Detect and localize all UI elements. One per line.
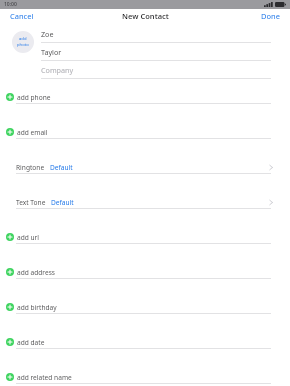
staticText: New Contact	[122, 11, 169, 21]
staticText: Zoe	[41, 29, 54, 39]
button[interactable]: add address	[0, 266, 290, 279]
staticText: Taylor	[41, 47, 62, 57]
staticText: add related name	[17, 373, 72, 382]
staticText: add phone	[17, 93, 51, 102]
staticText: add url	[17, 233, 40, 242]
button[interactable]: add date	[0, 336, 290, 349]
staticText: add birthday	[17, 303, 57, 312]
staticText: add address	[17, 268, 55, 277]
button[interactable]: add birthday	[0, 301, 290, 314]
staticText: Default	[50, 163, 73, 172]
button[interactable]: Done	[251, 9, 290, 23]
staticText: photo	[17, 42, 29, 48]
staticText: Company	[41, 65, 74, 75]
staticText: add	[19, 36, 27, 42]
staticText: 10:00	[4, 1, 17, 8]
staticText: Cancel	[10, 11, 34, 21]
button[interactable]: add email	[0, 126, 290, 139]
staticText: Default	[51, 198, 74, 207]
button[interactable]: Taylor	[41, 43, 271, 61]
button[interactable]: Company	[41, 61, 271, 79]
button[interactable]: Text Tone	[0, 196, 290, 209]
button[interactable]: add url	[0, 231, 290, 244]
button[interactable]: Zoe	[41, 25, 271, 43]
button[interactable]: add related name	[0, 371, 290, 384]
button[interactable]: add phone	[0, 91, 290, 104]
button[interactable]: Ringtone	[0, 161, 290, 174]
staticText: Ringtone	[16, 163, 45, 172]
staticText: add email	[17, 128, 48, 137]
button[interactable]: add photo	[12, 31, 34, 53]
button[interactable]: Cancel	[0, 9, 44, 23]
staticText: Done	[261, 11, 280, 21]
staticText: Text Tone	[16, 198, 46, 207]
staticText: add date	[17, 338, 45, 347]
